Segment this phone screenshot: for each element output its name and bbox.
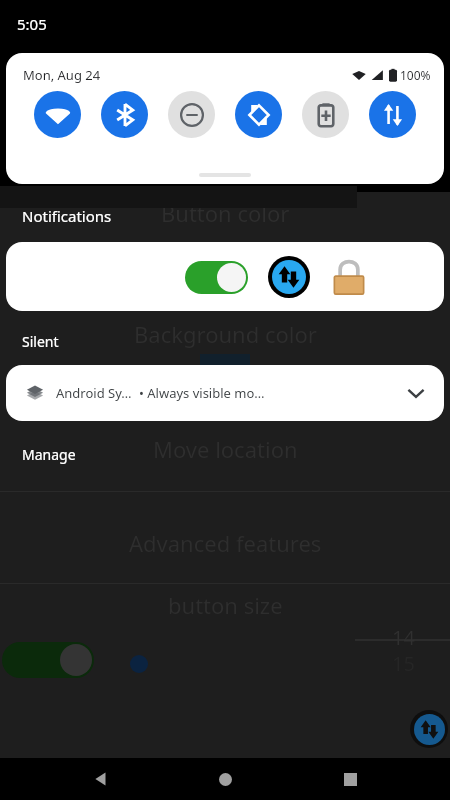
button[interactable]: Auto rotate <box>235 91 282 138</box>
button[interactable]: Recent apps <box>326 758 374 800</box>
staticText: Manage <box>22 445 76 464</box>
button[interactable]: Mobile data <box>369 91 416 138</box>
button[interactable]: Home <box>201 758 249 800</box>
button[interactable]: Mobile data <box>6 242 444 311</box>
staticText: Notifications <box>22 206 112 226</box>
button[interactable]: Wi-Fi <box>34 91 81 138</box>
staticText: Android Sy… <box>56 384 132 402</box>
staticText: 5:05 <box>17 14 47 34</box>
button[interactable] <box>2 642 94 678</box>
button[interactable]: Battery saver <box>302 91 349 138</box>
button[interactable]: Toggle mobile data <box>410 710 448 748</box>
button[interactable]: Bluetooth <box>101 91 148 138</box>
button[interactable]: Mobile data <box>268 256 310 298</box>
button[interactable]: Lock <box>332 257 366 297</box>
staticText: Move location <box>153 434 298 464</box>
staticText: 100% <box>400 67 431 83</box>
button[interactable] <box>185 261 248 294</box>
staticText: Advanced features <box>129 528 322 558</box>
staticText: Background color <box>134 319 317 349</box>
button[interactable]: Android Sy… <box>6 365 444 421</box>
staticText: Mon, Aug 24 <box>23 66 101 84</box>
button[interactable]: Back <box>77 758 125 800</box>
staticText: • Always visible mobile dat… is displayi… <box>139 384 271 402</box>
staticText: button size <box>168 590 283 620</box>
staticText: 14 <box>392 624 415 651</box>
button[interactable]: Do not disturb <box>168 91 215 138</box>
button[interactable]: Expand <box>404 381 428 405</box>
staticText: Button color <box>161 198 290 228</box>
staticText: Silent <box>22 332 59 351</box>
